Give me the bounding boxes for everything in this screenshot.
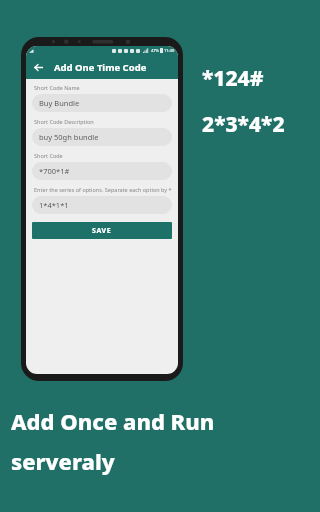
staticText: 11:30 — [164, 48, 175, 53]
button[interactable]: buy 50gh bundle — [32, 128, 172, 146]
staticText: Add Once and Run — [11, 406, 215, 436]
button[interactable]: Buy Bundle — [32, 94, 172, 112]
staticText: Short Code — [34, 152, 63, 159]
staticText: 1*4*1*1 — [39, 200, 69, 210]
staticText: buy 50gh bundle — [39, 132, 99, 142]
staticText: *124# — [202, 64, 264, 93]
button[interactable]: SAVE — [32, 222, 172, 239]
staticText: Add One Time Code — [54, 61, 147, 74]
staticText: serveraly — [11, 446, 115, 476]
staticText: Buy Bundle — [39, 98, 80, 108]
staticText: Short Code Name — [34, 84, 80, 91]
button[interactable]: Back — [30, 59, 46, 75]
staticText: SAVE — [92, 226, 112, 236]
staticText: *700*1# — [39, 166, 70, 176]
button[interactable]: 1*4*1*1 — [32, 196, 172, 214]
staticText: Enter the series of options. Separate ea… — [34, 186, 172, 193]
staticText: Short Code Description — [34, 118, 94, 125]
staticText: 2*3*4*2 — [202, 110, 285, 139]
button[interactable]: *700*1# — [32, 162, 172, 180]
staticText: 47% — [151, 48, 159, 53]
